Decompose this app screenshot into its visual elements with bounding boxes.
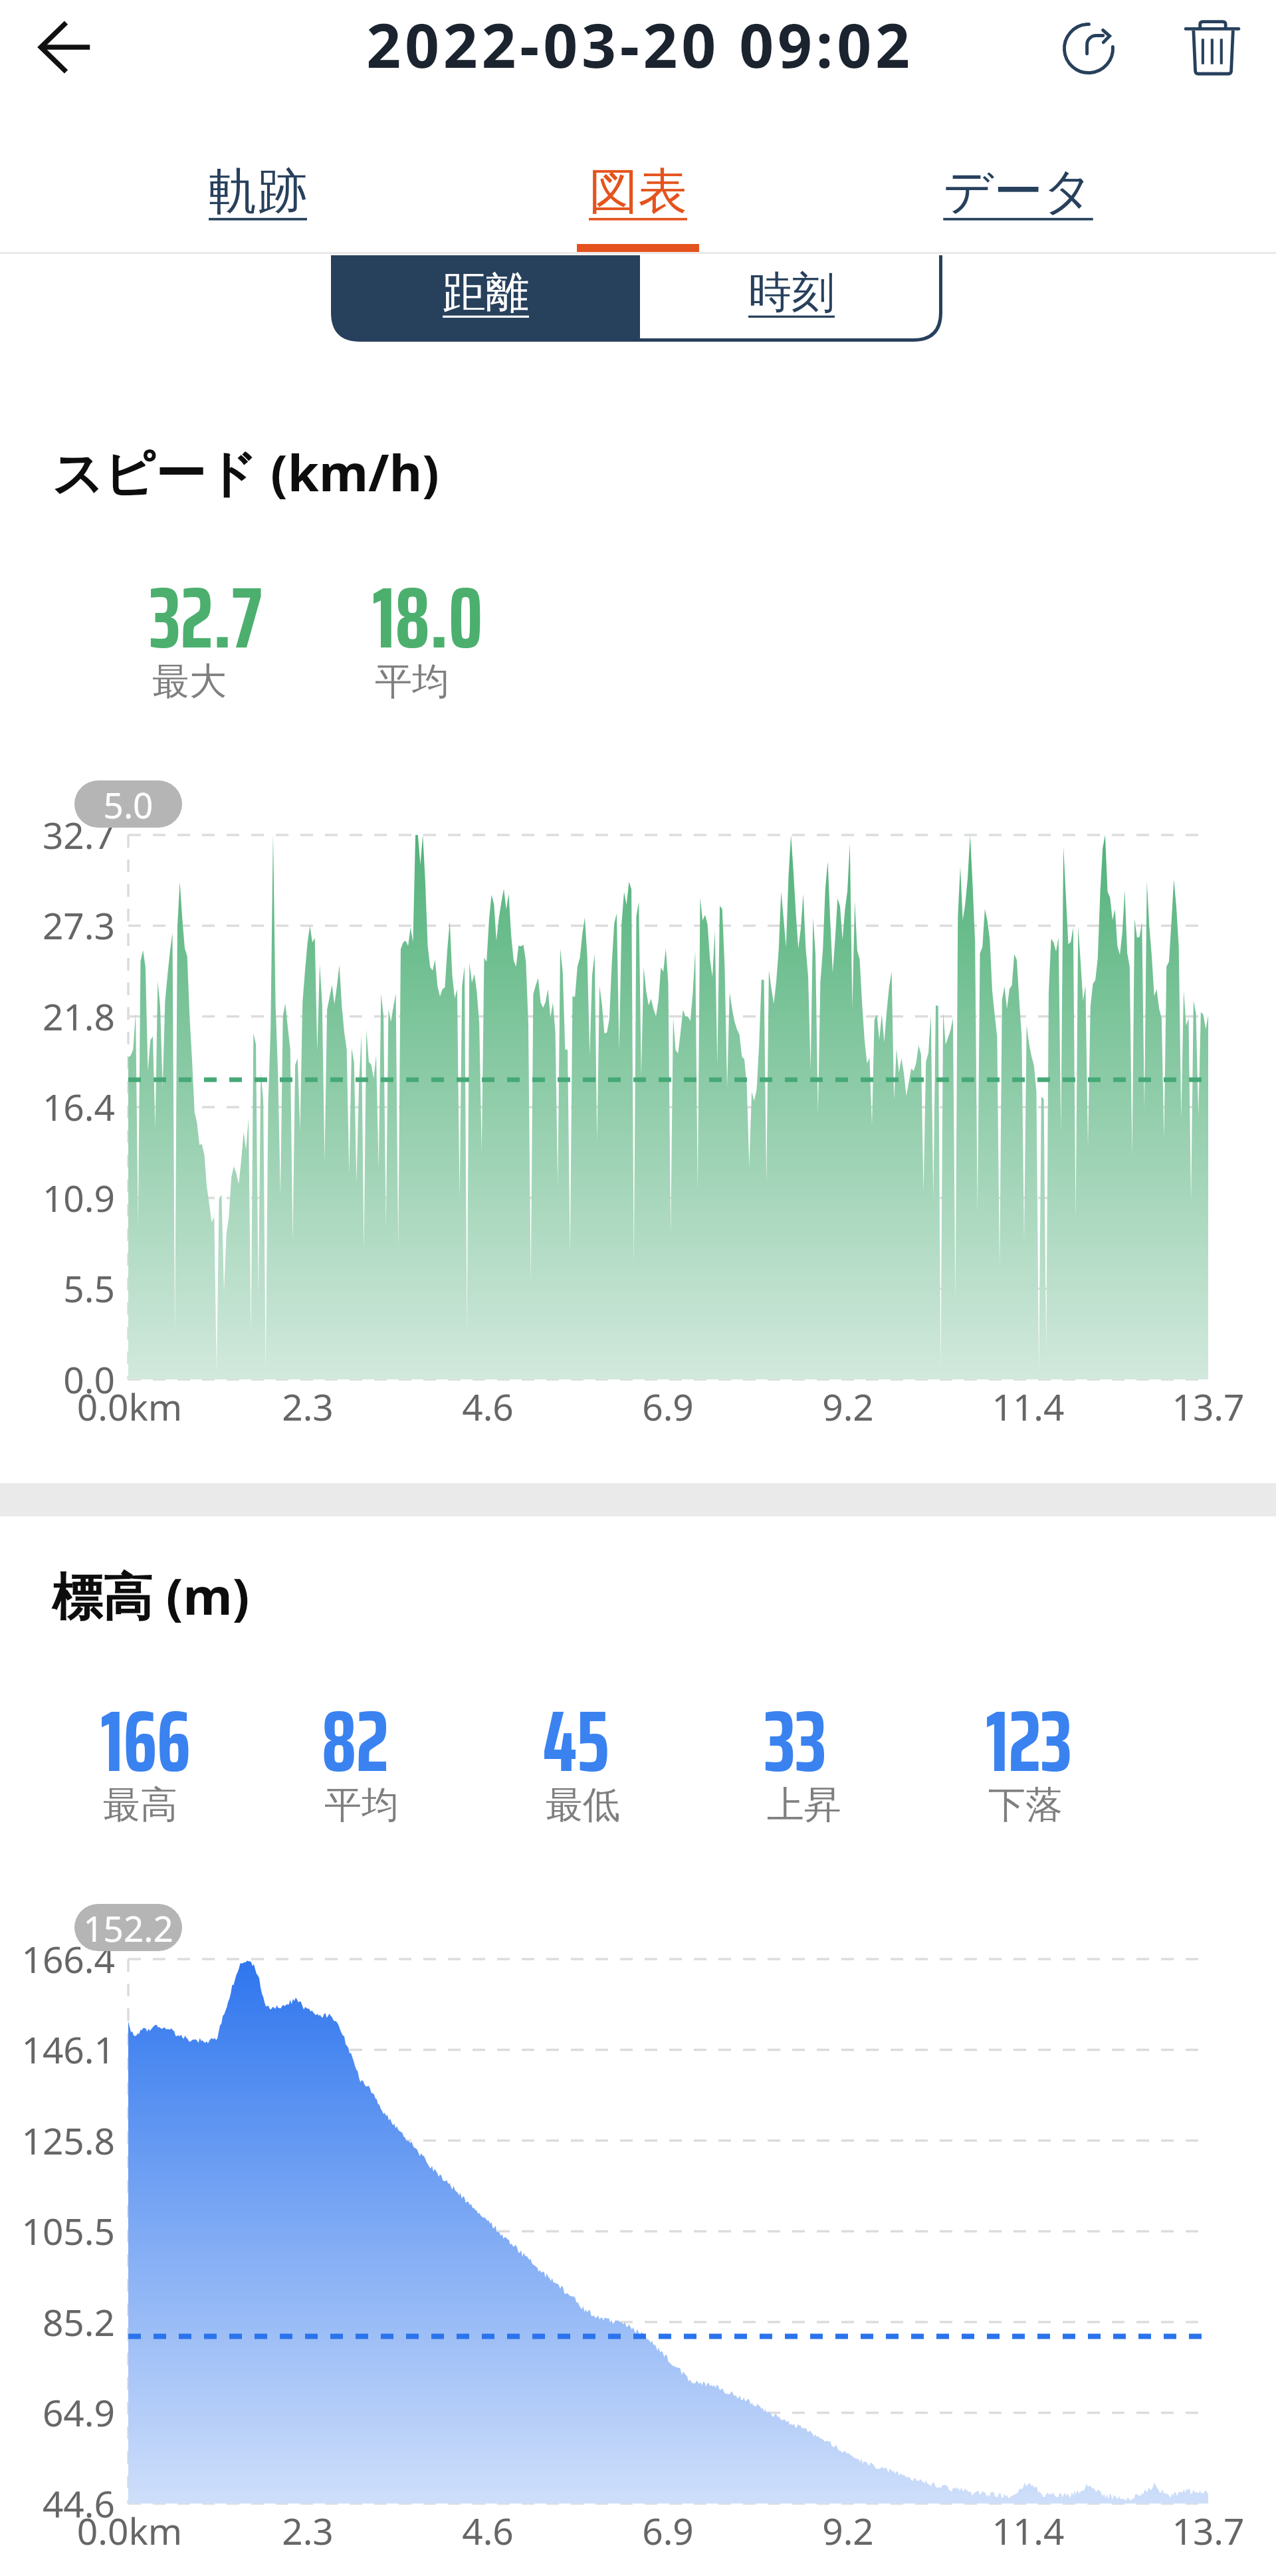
staticText: スピード (km/h)	[52, 437, 439, 507]
staticText: 2022-03-20 09:02	[274, 3, 1006, 86]
staticText: 距離	[443, 265, 529, 320]
staticText: 5.0	[74, 780, 182, 828]
staticText: 146.1	[0, 2024, 115, 2074]
staticText: データ	[885, 161, 1151, 223]
staticText: 85.2	[0, 2297, 115, 2347]
staticText: 44.6	[0, 2478, 115, 2528]
button[interactable]: 軌跡	[125, 126, 391, 253]
staticText: 6.9	[469, 2506, 867, 2555]
staticText: 標高 (m)	[52, 1561, 250, 1630]
button[interactable]: データ	[885, 126, 1151, 253]
staticText: 最高	[103, 1782, 177, 1829]
button[interactable]: 距離	[331, 255, 640, 342]
staticText: 6.9	[469, 1381, 867, 1431]
staticText: 27.3	[0, 900, 115, 950]
staticText: 最低	[546, 1782, 620, 1829]
staticText: 33	[764, 1674, 827, 1809]
staticText: 2.3	[108, 1381, 507, 1431]
staticText: 4.6	[288, 2506, 687, 2555]
staticText: 32.7	[0, 810, 115, 860]
staticText: 125.8	[0, 2115, 115, 2165]
staticText: 上昇	[767, 1782, 841, 1829]
staticText: 166	[100, 1674, 191, 1809]
button[interactable]: 時刻	[640, 255, 942, 342]
staticText: 時刻	[748, 265, 835, 320]
staticText: 166.4	[0, 1934, 115, 1984]
staticText: 82	[322, 1674, 389, 1809]
staticText: 16.4	[0, 1082, 115, 1131]
staticText: 0.0km	[0, 2506, 329, 2555]
staticText: 152.2	[74, 1904, 182, 1951]
button[interactable]: Share	[1050, 10, 1127, 87]
staticText: 軌跡	[125, 161, 391, 223]
staticText: 下落	[988, 1782, 1063, 1829]
button[interactable]: Back	[27, 9, 104, 86]
staticText: 2.3	[108, 2506, 507, 2555]
staticText: 11.4	[829, 1381, 1227, 1431]
staticText: 105.5	[0, 2206, 115, 2256]
button[interactable]: Delete	[1174, 9, 1251, 86]
staticText: 5.5	[0, 1263, 115, 1313]
staticText: 45	[543, 1674, 609, 1809]
staticText: 10.9	[0, 1173, 115, 1223]
staticText: 9.2	[649, 1381, 1047, 1431]
staticText: 図表	[505, 161, 771, 223]
staticText: 13.7	[1009, 1381, 1276, 1431]
staticText: 0.0	[0, 1354, 115, 1404]
staticText: 13.7	[1009, 2506, 1276, 2555]
staticText: 0.0km	[0, 1381, 329, 1431]
button[interactable]: 図表	[505, 126, 771, 253]
staticText: 64.9	[0, 2387, 115, 2437]
staticText: 平均	[324, 1782, 399, 1829]
staticText: 平均	[375, 658, 449, 705]
staticText: 32.7	[150, 550, 262, 685]
staticText: 123	[986, 1674, 1072, 1809]
staticText: 9.2	[649, 2506, 1047, 2555]
staticText: 11.4	[829, 2506, 1227, 2555]
staticText: 21.8	[0, 991, 115, 1041]
staticText: 最大	[152, 658, 227, 705]
staticText: 4.6	[288, 1381, 687, 1431]
staticText: 18.0	[372, 550, 483, 685]
